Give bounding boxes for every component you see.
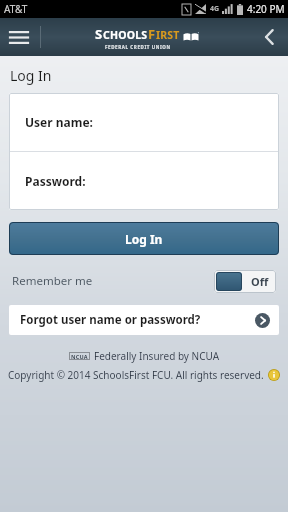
button[interactable]: Menu [0,18,38,56]
staticText: NCUA [71,353,88,360]
button[interactable]: Forgot user name or password? [9,305,279,335]
staticText: 4:20 PM [247,2,285,16]
button[interactable]: Remember me off [214,270,276,293]
staticText: CHOOLS [103,28,148,42]
button[interactable]: Log In [9,222,279,255]
staticText: FEDERAL CREDIT UNION [105,44,171,50]
staticText: Remember me [12,273,93,289]
button[interactable]: Password: [9,152,279,210]
staticText: Off [251,274,269,289]
staticText: Forgot user name or password? [20,312,201,328]
staticText: Password: [25,173,86,189]
button[interactable]: Back [250,18,288,56]
staticText: Log In [10,66,52,85]
button[interactable]: Information [268,369,280,381]
staticText: Log In [125,231,163,247]
staticText: IRST [156,28,180,42]
staticText: Federally Insured by NCUA [94,349,220,363]
staticText: Copyright © 2014 SchoolsFirst FCU. All r… [8,368,264,382]
staticText: F [148,25,156,43]
staticText: 4G [210,4,220,14]
staticText: User name: [25,114,93,130]
staticText: S [95,25,103,43]
staticText: AT&T [4,2,28,16]
button[interactable]: User name: [9,93,279,151]
